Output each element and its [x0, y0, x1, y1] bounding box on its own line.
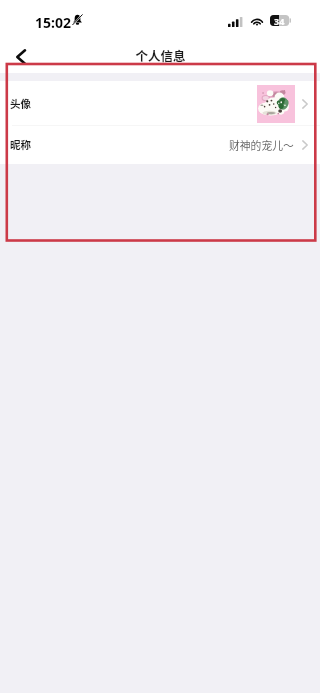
- staticText: 财神的宠儿～: [229, 137, 294, 153]
- button[interactable]: 昵称: [0, 126, 320, 164]
- staticText: 昵称: [10, 137, 31, 152]
- staticText: 头像: [10, 96, 31, 111]
- staticText: 34: [274, 15, 285, 27]
- staticText: 个人信息: [135, 46, 186, 64]
- button[interactable]: Back: [0, 40, 40, 73]
- button[interactable]: 头像: [0, 81, 320, 125]
- staticText: 15:02: [35, 13, 71, 32]
